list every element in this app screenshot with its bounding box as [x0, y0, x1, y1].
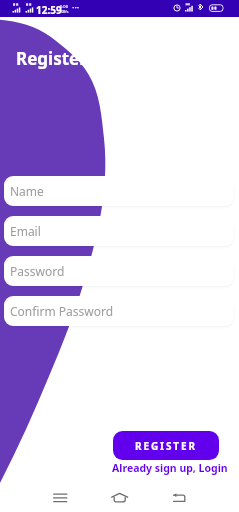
staticText: Name	[10, 183, 44, 199]
staticText: 0.00	[60, 4, 68, 9]
staticText: REGISTER	[135, 439, 197, 453]
button[interactable]: Back	[166, 490, 190, 512]
button[interactable]: Name	[4, 176, 234, 206]
button[interactable]: Already sign up, Login	[104, 461, 235, 475]
staticText: Password	[10, 263, 65, 279]
button[interactable]: Confirm Password	[4, 296, 234, 326]
button[interactable]: Home	[108, 490, 132, 512]
staticText: KB/s	[60, 9, 69, 14]
staticText: Email	[10, 223, 41, 239]
button[interactable]: Password	[4, 256, 234, 286]
button[interactable]: Email	[4, 216, 234, 246]
button[interactable]: Recents	[48, 490, 72, 512]
staticText: Already sign up, Login	[112, 461, 228, 475]
staticText: Register	[16, 47, 87, 70]
staticText: Confirm Password	[10, 303, 114, 319]
staticText: 12:59	[36, 3, 62, 17]
button[interactable]: REGISTER	[113, 431, 219, 460]
staticText: ···	[72, 1, 80, 13]
